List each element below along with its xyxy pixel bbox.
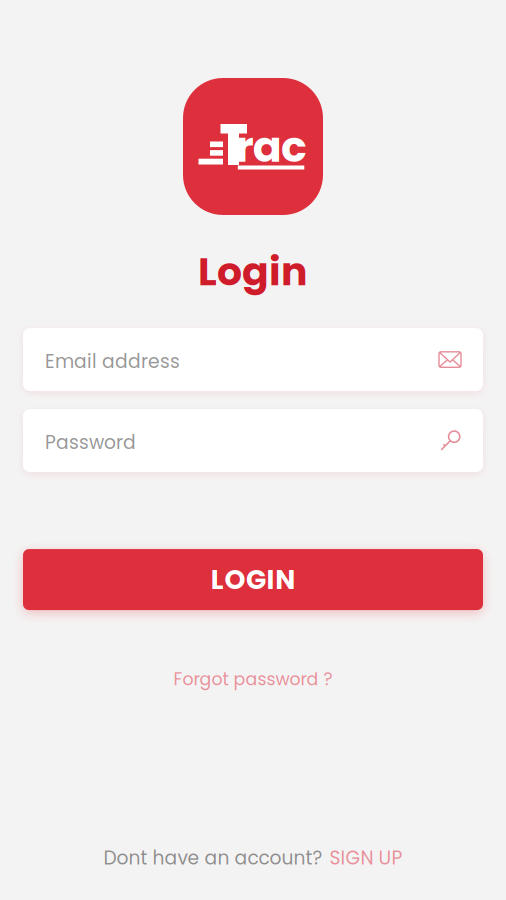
staticText: LOGIN	[211, 561, 295, 598]
button[interactable]: Forgot password ?	[173, 661, 332, 697]
staticText: Email address	[45, 348, 180, 375]
staticText: Password	[45, 429, 136, 456]
staticText: Forgot password ?	[173, 667, 332, 691]
button[interactable]: SIGN UP	[329, 845, 402, 871]
button[interactable]: LOGIN	[23, 549, 483, 610]
button[interactable]: Password	[23, 409, 483, 472]
staticText: rac	[235, 117, 307, 177]
button[interactable]: Email address	[23, 328, 483, 391]
staticText: Dont have an account?	[103, 845, 322, 871]
staticText: SIGN UP	[329, 845, 402, 871]
staticText: Login	[198, 244, 308, 299]
